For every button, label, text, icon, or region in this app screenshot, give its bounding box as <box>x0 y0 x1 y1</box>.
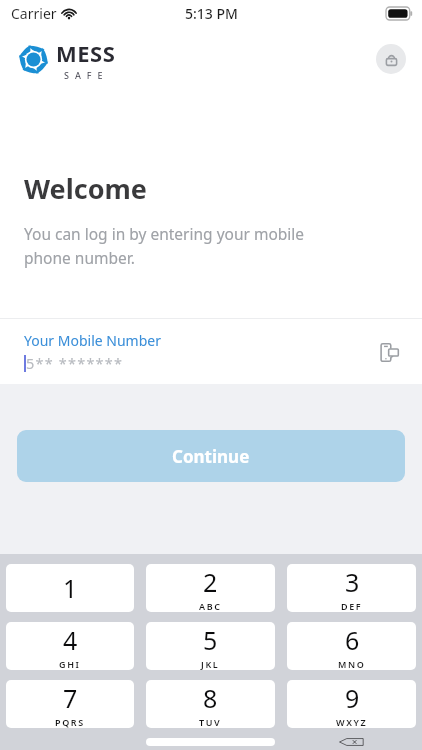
button[interactable]: 7 <box>6 680 134 728</box>
staticText: 9 <box>345 681 360 715</box>
button[interactable]: 6 <box>287 622 416 670</box>
button[interactable]: 9 <box>287 680 416 728</box>
staticText: Welcome <box>24 170 147 207</box>
staticText: SAFE <box>64 69 109 81</box>
button[interactable]: 8 <box>146 680 275 728</box>
staticText: 2 <box>203 565 218 599</box>
staticText: 1 <box>63 571 78 605</box>
button[interactable]: 1 <box>6 564 134 612</box>
staticText: 5** ******* <box>26 353 124 373</box>
staticText: Your Mobile Number <box>24 331 161 350</box>
staticText: 5 <box>203 623 218 657</box>
staticText: MNO <box>338 658 366 670</box>
staticText: 4 <box>63 623 78 657</box>
button[interactable]: Use SMS device <box>375 338 403 366</box>
staticText: You can log in by entering your mobile <box>24 223 305 244</box>
button[interactable]: MESS <box>18 38 116 81</box>
staticText: 3 <box>345 565 360 599</box>
button[interactable]: 5 <box>146 622 275 670</box>
staticText: 7 <box>63 681 78 715</box>
button[interactable]: Continue <box>17 430 405 482</box>
button[interactable]: 2 <box>146 564 275 612</box>
button[interactable]: Backspace <box>287 738 416 746</box>
staticText: 6 <box>345 623 360 657</box>
button[interactable]: 4 <box>6 622 134 670</box>
button[interactable]: 0 <box>146 738 275 746</box>
button[interactable]: 3 <box>287 564 416 612</box>
staticText: JKL <box>201 658 220 670</box>
staticText: ABC <box>199 600 222 612</box>
staticText: 5:13 PM <box>185 4 238 23</box>
staticText: phone number. <box>24 247 135 268</box>
staticText: Continue <box>172 445 250 468</box>
button[interactable]: Security lock <box>376 44 406 74</box>
staticText: Carrier <box>11 4 57 23</box>
staticText: MESS <box>56 38 116 68</box>
staticText: TUV <box>199 716 222 728</box>
staticText: PQRS <box>55 716 85 728</box>
staticText: GHI <box>59 658 81 670</box>
staticText: 8 <box>203 681 218 715</box>
button[interactable]: Your Mobile Number <box>0 319 422 384</box>
staticText: DEF <box>341 600 363 612</box>
staticText: WXYZ <box>336 716 368 728</box>
